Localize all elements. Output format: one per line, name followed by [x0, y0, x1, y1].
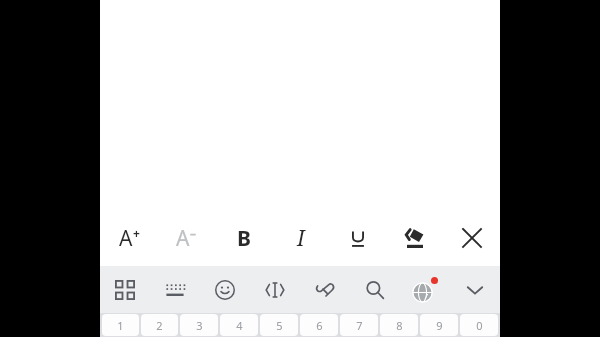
staticText: 8 [396, 318, 403, 333]
button[interactable]: Search [350, 266, 400, 313]
staticText: 0 [476, 318, 483, 333]
button[interactable]: Highlight [386, 210, 443, 266]
staticText: – [190, 225, 197, 241]
staticText: A [176, 224, 190, 253]
staticText: 5 [276, 318, 283, 333]
staticText: + [133, 225, 140, 241]
button[interactable]: Italic [272, 210, 329, 266]
button[interactable]: 6 [300, 314, 338, 336]
button[interactable]: Keyboard [150, 266, 200, 313]
button[interactable]: 8 [380, 314, 418, 336]
staticText: 3 [196, 318, 203, 333]
staticText: I [297, 224, 305, 253]
button[interactable]: 9 [420, 314, 458, 336]
button[interactable]: Underline [329, 210, 386, 266]
button[interactable]: Translate [400, 266, 450, 313]
button[interactable]: Collapse [450, 266, 500, 313]
button[interactable]: 4 [220, 314, 258, 336]
button[interactable]: 1 [102, 314, 139, 336]
button[interactable]: 0 [460, 314, 498, 336]
button[interactable]: Decrease text size [158, 210, 215, 266]
button[interactable]: 5 [260, 314, 298, 336]
staticText: A [119, 224, 133, 253]
button[interactable]: Emoji [200, 266, 250, 313]
staticText: 4 [236, 318, 243, 333]
button[interactable]: 3 [180, 314, 218, 336]
button[interactable]: 7 [340, 314, 378, 336]
staticText: 9 [436, 318, 443, 333]
staticText: B [237, 224, 251, 253]
staticText: 1 [117, 318, 124, 333]
button[interactable]: Increase text size [100, 210, 158, 266]
staticText: 6 [316, 318, 323, 333]
button[interactable]: 2 [141, 314, 178, 336]
button[interactable]: Attach link [300, 266, 350, 313]
button[interactable]: Bold [215, 210, 272, 266]
button[interactable]: Close formatting [443, 210, 500, 266]
staticText: 7 [356, 318, 363, 333]
button[interactable]: Apps [100, 266, 150, 313]
staticText: 2 [156, 318, 163, 333]
button[interactable]: Insert text field [250, 266, 300, 313]
